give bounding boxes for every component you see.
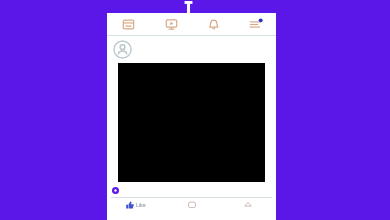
button[interactable]: App logo [184,0,193,13]
button[interactable]: Menu [234,13,276,35]
button[interactable]: Watch [150,13,192,35]
button[interactable]: Reactions [112,187,119,194]
staticText: Like [136,202,146,209]
button[interactable]: Share [220,198,276,212]
button[interactable]: Notifications [192,13,234,35]
button[interactable]: Profile [113,40,132,59]
button[interactable]: Feed [107,13,150,35]
button[interactable]: Comment [164,198,220,212]
button[interactable]: Like [107,198,164,212]
